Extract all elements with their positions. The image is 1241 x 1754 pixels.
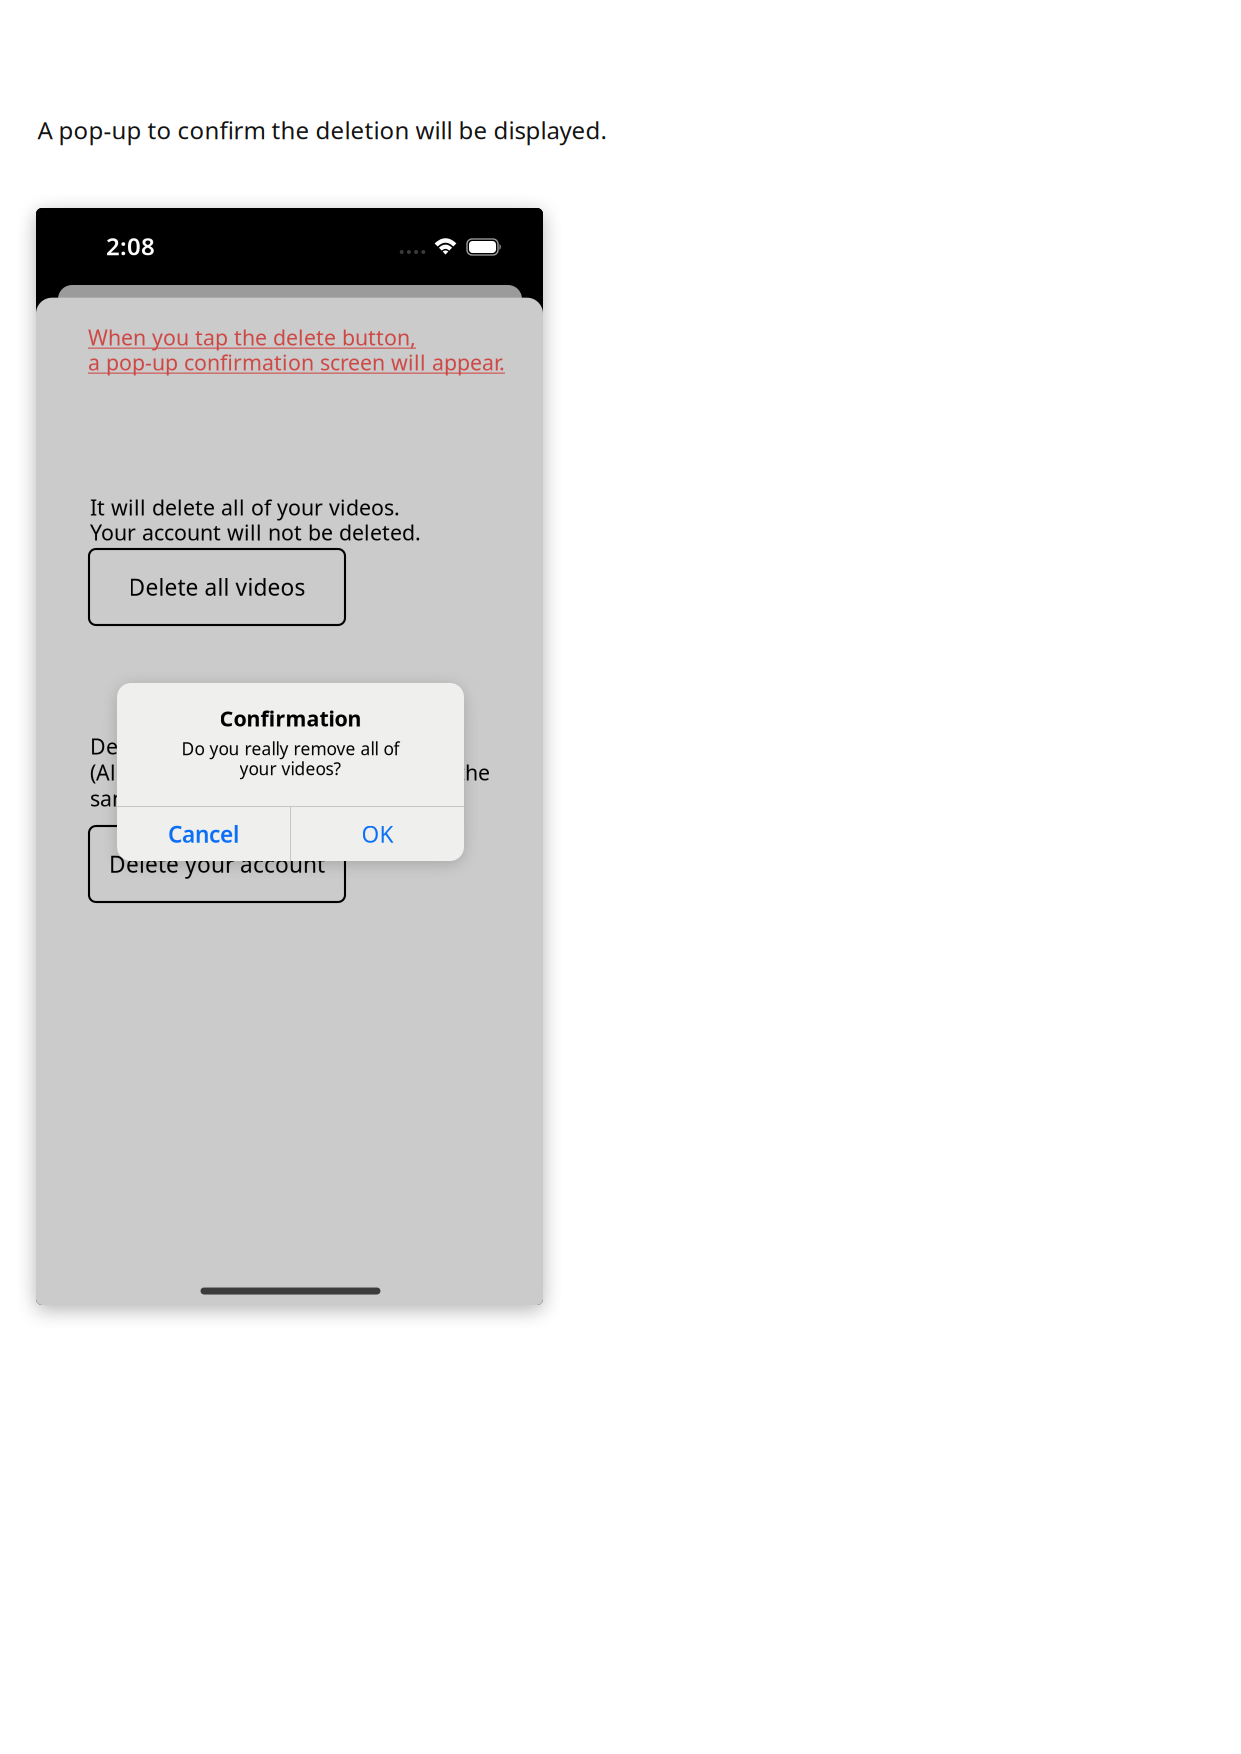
- staticText: Your account will not be deleted.: [90, 518, 421, 546]
- staticText: your videos?: [239, 757, 341, 780]
- button[interactable]: OK: [291, 807, 464, 861]
- button[interactable]: Delete all videos: [89, 549, 345, 625]
- button[interactable]: Delete your account: [89, 826, 345, 902]
- button[interactable]: Cancel: [117, 807, 290, 861]
- staticText: It will delete all of your videos.: [90, 493, 400, 521]
- staticText: Cancel: [168, 819, 239, 849]
- staticText: When you tap the delete button,: [88, 323, 416, 351]
- staticText: Delete your account.: [90, 732, 299, 760]
- staticText: Do you really remove all of: [181, 737, 399, 760]
- staticText: OK: [361, 819, 393, 849]
- staticText: Confirmation: [219, 704, 361, 732]
- staticText: 2:08: [106, 230, 155, 262]
- staticText: same time.): [90, 784, 208, 812]
- staticText: Delete your account: [109, 849, 325, 879]
- staticText: (All of your videos will be deleted at t…: [90, 758, 490, 786]
- staticText: Delete all videos: [128, 572, 305, 602]
- staticText: A pop-up to confirm the deletion will be…: [37, 114, 606, 146]
- staticText: a pop-up confirmation screen will appear…: [88, 348, 505, 376]
